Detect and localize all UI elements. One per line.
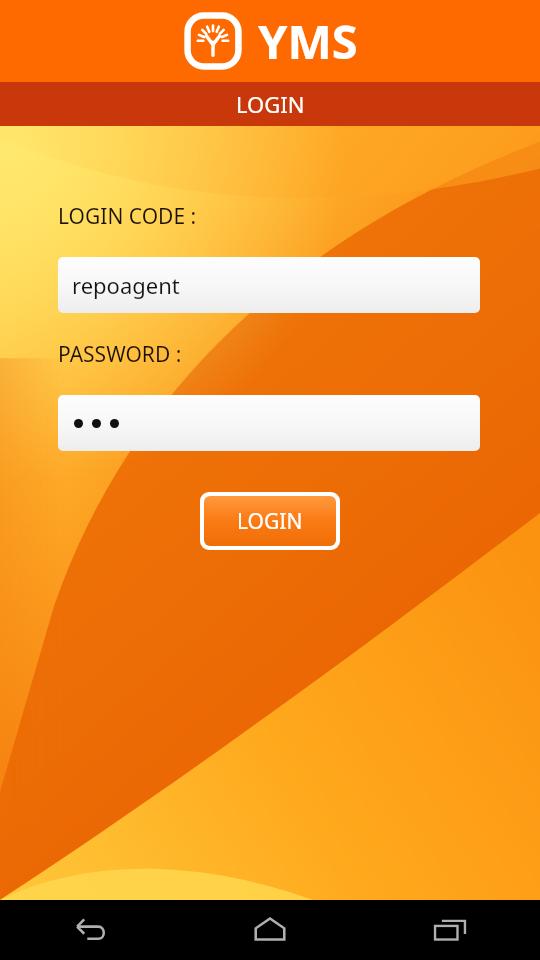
button[interactable]: Back xyxy=(0,900,180,960)
staticText: LOGIN xyxy=(237,507,303,536)
button[interactable]: LOGIN xyxy=(200,492,340,550)
staticText: YMS xyxy=(258,9,358,73)
staticText: LOGIN xyxy=(236,89,305,119)
staticText: LOGIN CODE : xyxy=(58,202,197,231)
button[interactable] xyxy=(58,395,480,451)
button[interactable]: repoagent xyxy=(58,257,480,313)
staticText: repoagent xyxy=(72,270,180,300)
button[interactable]: Recent apps xyxy=(360,900,540,960)
staticText: PASSWORD : xyxy=(58,340,182,369)
button[interactable]: Home xyxy=(180,900,360,960)
